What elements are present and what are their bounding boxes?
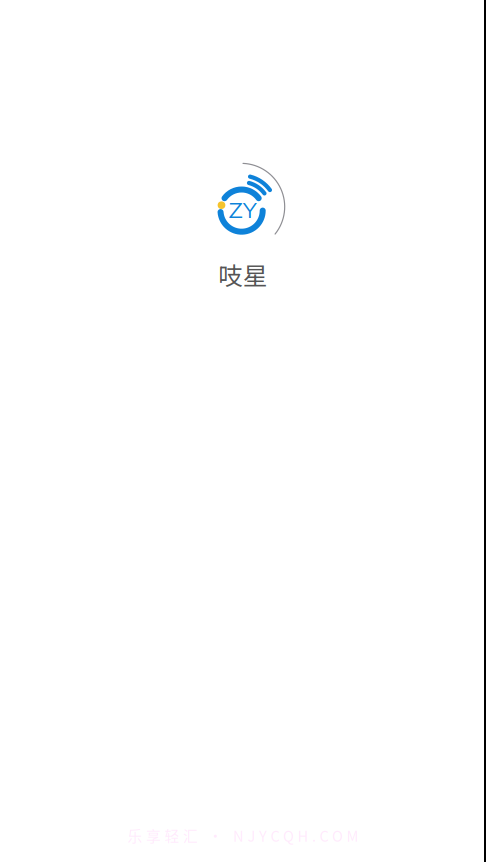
staticText: ZY <box>228 198 257 223</box>
staticText: 乐享轻汇 · NJYCQH.COM <box>127 825 358 846</box>
staticText: 吱星 <box>218 261 268 290</box>
